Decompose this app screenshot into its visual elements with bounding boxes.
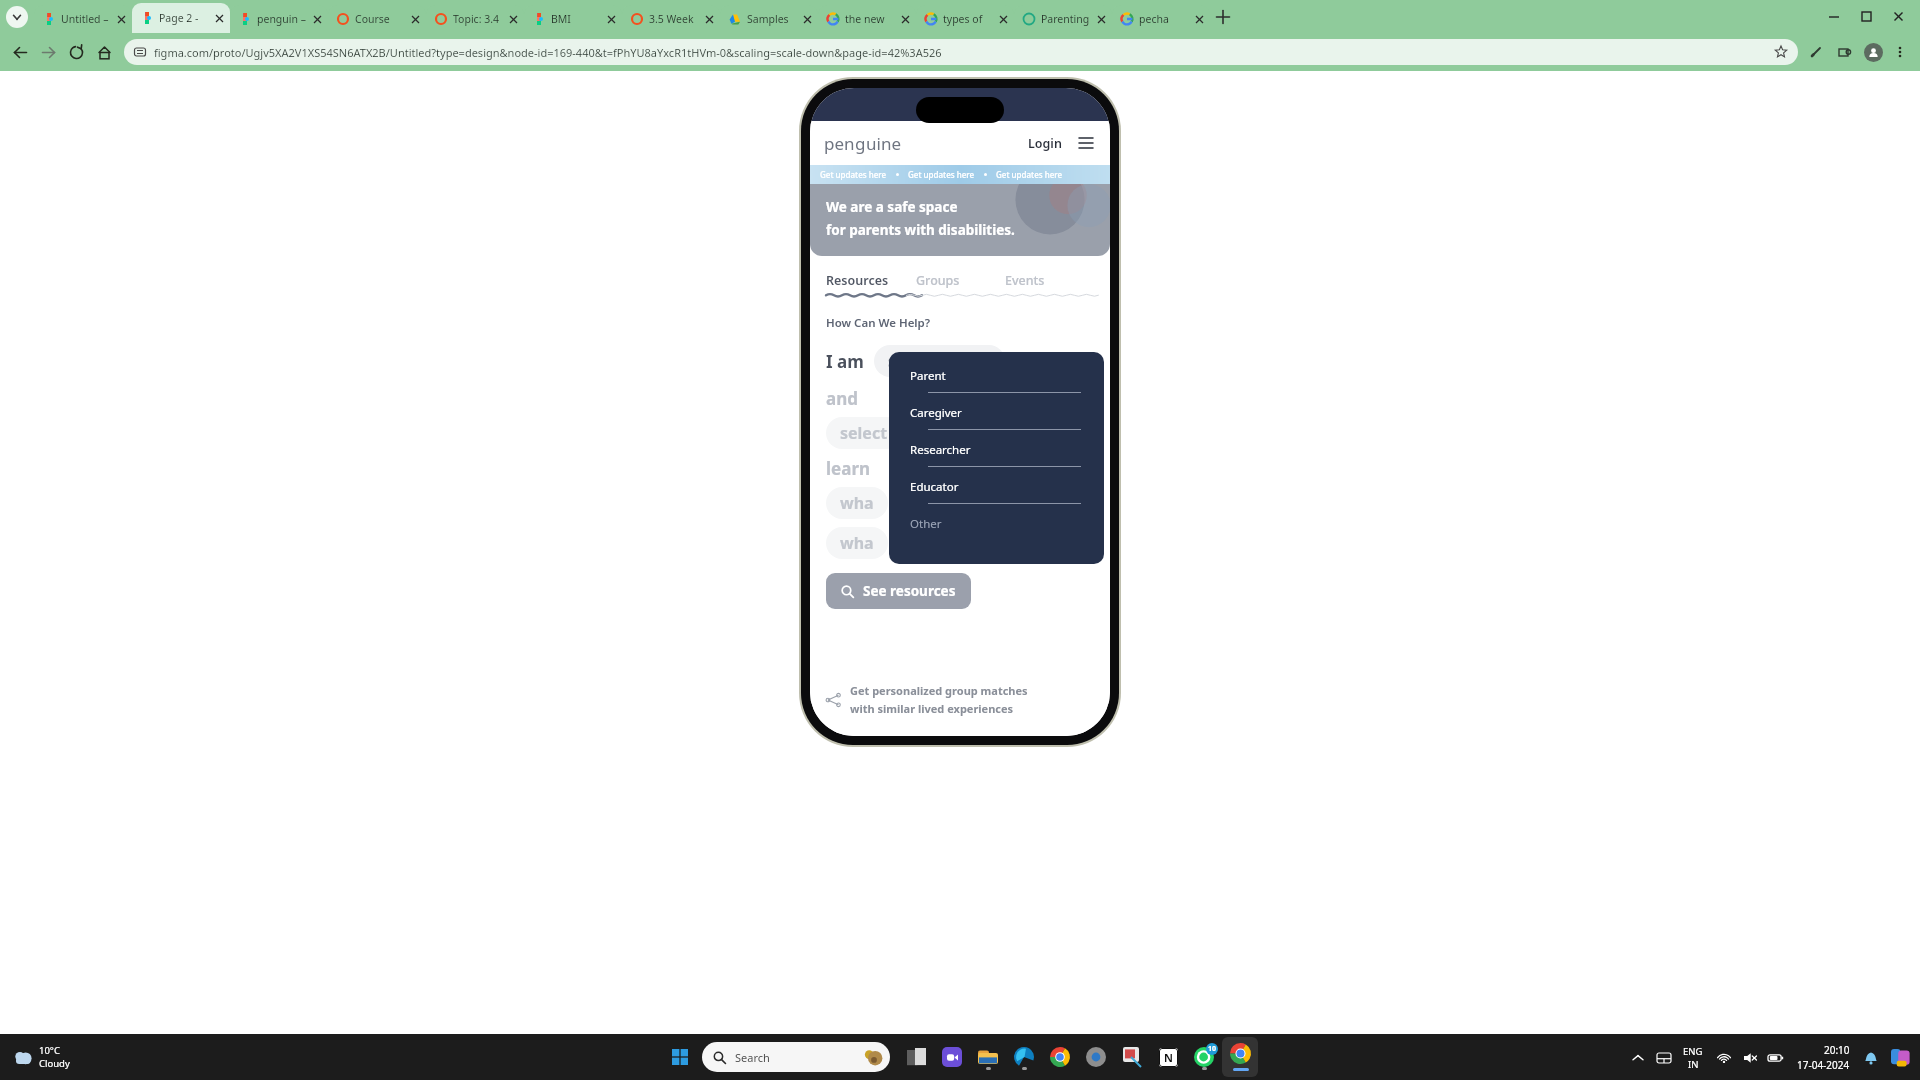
staticText: I am [826,350,864,373]
button[interactable]: Close tab [506,12,520,26]
button[interactable]: Bookmark [1774,45,1788,59]
staticText: Researcher [910,442,971,458]
button[interactable]: Samples of [720,5,818,33]
button[interactable]: Volume muted [1737,1045,1763,1071]
button[interactable]: Close tab [702,12,716,26]
staticText: the new sch [845,12,895,26]
staticText: BMI Cards - [551,12,601,26]
button[interactable]: Forward [34,38,62,66]
staticText: 10 [1208,1044,1217,1054]
button[interactable]: Close tab [408,12,422,26]
button[interactable]: wha [826,527,888,559]
staticText: Parenting S [1041,12,1091,26]
button[interactable]: Close tab [996,12,1010,26]
button[interactable]: Page 2 - Unt [132,3,230,33]
button[interactable]: 3.5 Week 6 [622,5,720,33]
button[interactable]: the new sch [818,5,916,33]
button[interactable]: penguin – Fi [230,5,328,33]
button[interactable]: wha [826,487,888,519]
staticText: Get updates here [908,169,975,180]
button[interactable]: Close tab [114,12,128,26]
button[interactable]: Close tab [310,12,324,26]
staticText: Parent [910,368,946,384]
button[interactable]: Parenting S [1014,5,1112,33]
button[interactable]: Start [663,1040,697,1074]
button[interactable]: Touchpad [1651,1045,1677,1071]
staticText: select role [888,350,971,372]
staticText: Get personalized group matches [850,683,1028,698]
staticText: wha [840,492,874,514]
staticText: for parents with disabilities. [826,221,1015,239]
button[interactable]: Settings [1078,1039,1114,1075]
button[interactable]: Other [910,516,1083,532]
button[interactable]: types of bus [916,5,1014,33]
button[interactable]: Search [702,1042,890,1072]
button[interactable]: 20:10 [1797,1043,1850,1072]
button[interactable]: Reload [62,38,90,66]
staticText: N [1164,1050,1173,1065]
button[interactable]: Educator [910,479,1083,516]
button[interactable]: select role [874,345,1005,377]
button[interactable]: Get personalized group matches [826,683,1094,716]
staticText: 17-04-2024 [1797,1058,1850,1072]
button[interactable]: Close tab [604,12,618,26]
staticText: Groups [916,272,960,289]
button[interactable]: File Explorer [970,1039,1006,1075]
button[interactable]: Copilot [1888,1046,1912,1070]
button[interactable]: WhatsApp [1186,1039,1222,1075]
button[interactable]: pen [824,132,901,155]
button[interactable]: Extensions [1830,38,1858,66]
button[interactable]: Events [1005,272,1094,289]
button[interactable]: Close tab [1192,12,1206,26]
button[interactable]: select [826,417,902,449]
button[interactable]: Close tab [800,12,814,26]
button[interactable]: Groups [916,272,1005,289]
button[interactable]: Profile [1860,39,1886,65]
button[interactable]: 10°C [12,1044,70,1070]
button[interactable]: Show hidden icons [1625,1045,1651,1071]
button[interactable]: Menu [1076,133,1096,153]
button[interactable]: Task view [898,1039,934,1075]
button[interactable]: ENG [1683,1045,1703,1071]
button[interactable]: Window control [1818,0,1850,33]
button[interactable]: More [1886,38,1914,66]
button[interactable]: Google Chrome [1222,1037,1258,1077]
staticText: Search [735,1050,770,1065]
button[interactable]: Battery [1763,1045,1789,1071]
button[interactable]: Parent [910,368,1083,405]
staticText: Educator [910,479,959,495]
staticText: Other [910,516,942,532]
button[interactable]: Notifications [1858,1045,1884,1071]
button[interactable]: Back [6,38,34,66]
button[interactable]: See resources [826,573,971,609]
staticText: g [855,132,866,155]
staticText: ENG [1683,1045,1703,1058]
button[interactable]: Network [1711,1045,1737,1071]
button[interactable]: Caregiver [910,405,1083,442]
button[interactable]: Tab search [0,0,34,33]
button[interactable]: Untitled – Fi [34,5,132,33]
button[interactable]: Window control [1882,0,1914,33]
button[interactable]: Login [1024,131,1066,156]
button[interactable]: Close tab [1094,12,1108,26]
button[interactable]: Close tab [212,11,226,25]
button[interactable]: Researcher [910,442,1083,479]
button[interactable]: figma.com/proto/Ugjv5XA2V1XS54SN6ATX2B/U… [124,39,1798,65]
button[interactable]: Topic: 3.4 Di [426,5,524,33]
button[interactable]: Zoom [934,1039,970,1075]
button[interactable]: Notion [1150,1039,1186,1075]
button[interactable]: Resources [826,272,916,289]
button[interactable]: BMI Cards - [524,5,622,33]
staticText: Course Mod [355,12,405,26]
button[interactable]: pecha kuch [1112,5,1210,33]
button[interactable]: Home [90,38,118,66]
button[interactable]: Edit [1802,38,1830,66]
button[interactable]: Course Mod [328,5,426,33]
button[interactable]: Chrome [1042,1039,1078,1075]
button[interactable]: Window control [1850,0,1882,33]
staticText: IN [1688,1058,1699,1071]
button[interactable]: Snipping Tool [1114,1039,1150,1075]
button[interactable]: New tab [1210,0,1236,33]
button[interactable]: Edge [1006,1039,1042,1075]
button[interactable]: Close tab [898,12,912,26]
